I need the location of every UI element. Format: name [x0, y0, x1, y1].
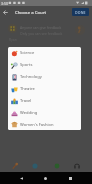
button[interactable]: Sports — [8, 59, 81, 71]
button[interactable]: Music — [72, 161, 81, 170]
staticText: Theatre — [20, 86, 35, 92]
button[interactable]: Wedding — [8, 107, 81, 119]
staticText: Travel — [20, 98, 32, 104]
button[interactable]: Messages — [30, 161, 39, 170]
button[interactable]: DONE — [72, 8, 89, 16]
button[interactable]: Theatre — [8, 83, 81, 95]
button[interactable]: Women's Fashion — [8, 119, 81, 130]
staticText: Ryan — [9, 37, 17, 42]
button[interactable]: Back — [15, 172, 28, 184]
staticText: Anyone can give feedback — [20, 25, 62, 30]
button[interactable]: Navigate up — [0, 6, 11, 18]
button[interactable]: Camera — [52, 161, 61, 170]
button[interactable]: Technology — [8, 71, 81, 83]
button[interactable]: Science — [8, 47, 81, 59]
button[interactable]: Recent apps — [64, 172, 77, 184]
button[interactable]: Home — [39, 172, 52, 184]
staticText: Women's Fashion — [20, 122, 54, 128]
staticText: Choose a Court — [15, 9, 46, 15]
staticText: 3:50 — [1, 1, 9, 6]
staticText: DONE — [75, 10, 86, 15]
staticText: Technology — [20, 74, 42, 80]
staticText: Sports — [20, 62, 33, 68]
staticText: Science — [20, 50, 35, 56]
staticText: Wedding — [20, 110, 38, 116]
button[interactable]: Phone — [10, 161, 19, 170]
staticText: Only you can see feedback — [20, 31, 63, 36]
button[interactable]: Travel — [8, 95, 81, 107]
